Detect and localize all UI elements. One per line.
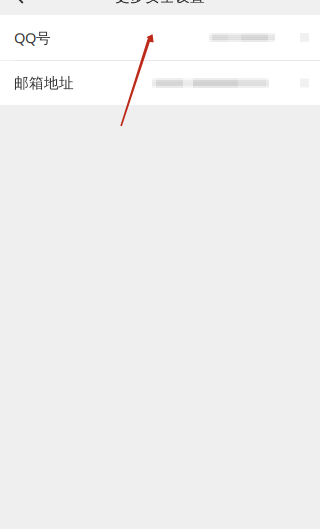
- button[interactable]: Back: [0, 0, 44, 15]
- staticText: 邮箱地址: [14, 74, 74, 92]
- staticText: QQ号: [14, 28, 51, 47]
- button[interactable]: 邮箱地址: [0, 61, 320, 105]
- button[interactable]: QQ号: [0, 15, 320, 60]
- staticText: 更多安全设置: [115, 0, 205, 5]
